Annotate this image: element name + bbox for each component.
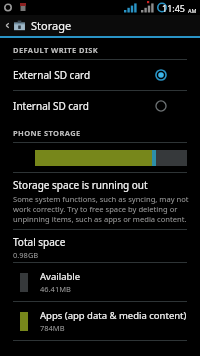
staticText: Some system functions, such as syncing, … (13, 194, 189, 224)
staticText: Storage space is running out (13, 178, 148, 192)
button[interactable]: Internal SD card (0, 91, 200, 121)
button[interactable]: Total space (0, 230, 200, 262)
staticText: PHONE STORAGE (13, 128, 81, 138)
staticText: Apps (app data & media content) (40, 309, 187, 322)
button[interactable]: Apps (app data & media content) (0, 302, 200, 340)
staticText: AM (188, 7, 197, 14)
staticText: 11:45 (162, 2, 186, 14)
staticText: Storage (31, 18, 72, 33)
staticText: DEFAULT WRITE DISK (13, 45, 99, 55)
button[interactable]: Available (0, 263, 200, 301)
staticText: External SD card (13, 68, 154, 82)
staticText: Total space (13, 235, 66, 249)
staticText: 46.41MB (40, 284, 71, 294)
button[interactable]: Navigate up, Storage (0, 15, 200, 36)
staticText: Internal SD card (13, 99, 154, 113)
staticText: 784MB (40, 323, 65, 333)
staticText: 0.98GB (13, 250, 39, 260)
staticText: Available (40, 270, 81, 283)
button[interactable]: External SD card (0, 60, 200, 90)
